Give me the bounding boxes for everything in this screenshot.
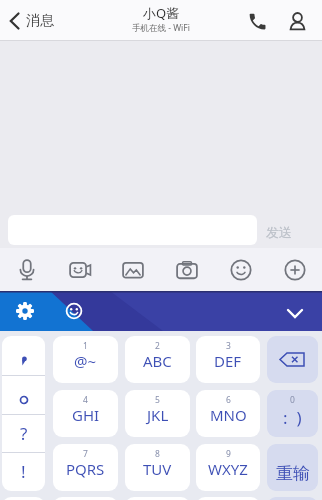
button[interactable]: 5 (125, 390, 190, 437)
button[interactable]: 4 (53, 390, 118, 437)
staticText: WXYZ (208, 459, 248, 479)
button[interactable] (268, 248, 322, 291)
button[interactable] (106, 248, 160, 291)
button[interactable] (196, 497, 260, 500)
staticText: 发送 (266, 224, 292, 240)
staticText: : ) (283, 406, 302, 429)
staticText: 9 (226, 448, 231, 460)
staticText: 4 (83, 394, 88, 406)
staticText: 2 (155, 340, 160, 352)
button[interactable]: 6 (196, 390, 260, 437)
button[interactable] (53, 497, 118, 500)
button[interactable]: ! (2, 452, 45, 490)
staticText: ? (20, 422, 28, 445)
button[interactable] (2, 375, 45, 413)
button[interactable] (2, 497, 45, 500)
staticText: 8 (155, 448, 160, 460)
button[interactable] (286, 10, 308, 32)
button[interactable] (2, 336, 45, 374)
staticText: 消息 (26, 12, 54, 30)
button[interactable]: 消息 (8, 12, 54, 30)
button[interactable]: 9 (196, 444, 260, 491)
staticText: ABC (143, 351, 172, 371)
button[interactable]: 发送 (266, 224, 292, 240)
staticText: 5 (155, 394, 160, 406)
button[interactable]: 7 (53, 444, 118, 491)
button[interactable]: 2 (125, 336, 190, 383)
button[interactable]: 3 (196, 336, 260, 383)
button[interactable] (214, 248, 268, 291)
button[interactable] (0, 291, 50, 331)
button[interactable] (0, 248, 53, 291)
staticText: 小Q酱 (143, 4, 180, 22)
button[interactable]: 0 (267, 390, 318, 437)
staticText: GHI (72, 405, 100, 425)
staticText: 6 (226, 394, 231, 406)
staticText: 0 (290, 394, 295, 406)
button[interactable]: 重输 (267, 444, 318, 491)
button[interactable]: ? (2, 414, 45, 452)
button[interactable] (53, 248, 106, 291)
staticText: 7 (83, 448, 88, 460)
staticText: ! (21, 460, 26, 483)
staticText: TUV (143, 459, 172, 479)
staticText: DEF (214, 351, 242, 371)
staticText: 3 (226, 340, 231, 352)
staticText: 重输 (276, 463, 310, 484)
button[interactable]: 1 (53, 336, 118, 383)
button[interactable] (50, 291, 100, 331)
staticText: MNO (210, 405, 247, 425)
button[interactable] (267, 497, 318, 500)
button[interactable] (272, 291, 322, 331)
button[interactable] (267, 336, 318, 383)
button[interactable] (160, 248, 214, 291)
staticText: 手机在线 - WiFi (132, 22, 190, 34)
button[interactable] (246, 10, 268, 32)
staticText: 1 (83, 340, 88, 352)
button[interactable] (125, 497, 190, 500)
staticText: JKL (147, 405, 169, 425)
staticText: @~ (74, 351, 97, 371)
staticText: PQRS (66, 459, 105, 479)
button[interactable]: 8 (125, 444, 190, 491)
